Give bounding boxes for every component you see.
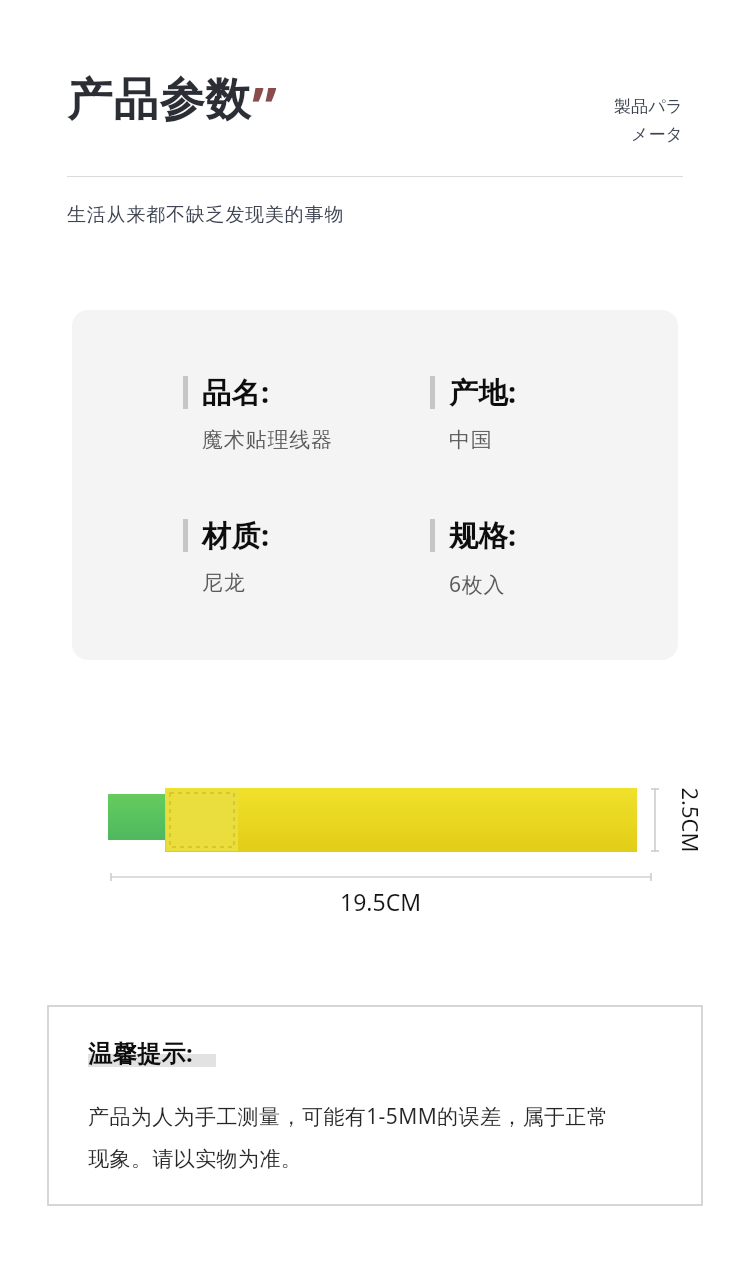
other: Yellow velcro strap xyxy=(165,788,637,852)
button[interactable]: 温馨提示: xyxy=(48,1006,702,1205)
staticText: 中国 xyxy=(449,427,493,453)
staticText: 温馨提示: xyxy=(88,1036,194,1069)
other: Green velcro tail xyxy=(108,794,168,840)
staticText: 19.5CM xyxy=(340,886,422,917)
staticText: ” xyxy=(252,68,277,144)
staticText: 产品为人为手工测量，可能有1-5MM的误差，属于正常 xyxy=(88,1102,609,1131)
staticText: 尼龙 xyxy=(202,570,246,596)
staticText: 6枚入 xyxy=(449,570,506,599)
button[interactable]: 品名: xyxy=(72,310,678,660)
staticText: 材质: xyxy=(202,515,270,555)
staticText: 现象。请以实物为准。 xyxy=(88,1146,302,1172)
staticText: 产地: xyxy=(449,372,517,412)
staticText: 产品参数 xyxy=(67,72,251,129)
staticText: 规格: xyxy=(449,515,517,555)
staticText: 2.5CM xyxy=(675,787,705,852)
staticText: 品名: xyxy=(202,372,270,412)
staticText: 製品パラ xyxy=(614,96,683,117)
staticText: 生活从来都不缺乏发现美的事物 xyxy=(67,203,345,227)
staticText: 魔术贴理线器 xyxy=(202,427,333,453)
staticText: メータ xyxy=(631,124,683,145)
